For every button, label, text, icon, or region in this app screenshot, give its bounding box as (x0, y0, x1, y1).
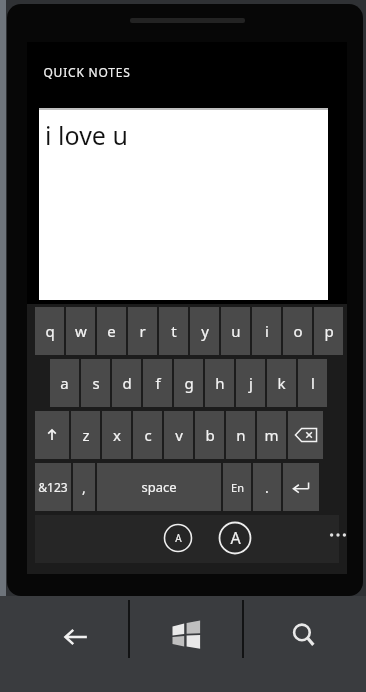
button[interactable]: i (252, 307, 281, 355)
staticText: a (60, 373, 69, 393)
staticText: o (293, 321, 303, 341)
button[interactable]: j (236, 359, 265, 407)
button[interactable]: d (112, 359, 141, 407)
button[interactable]: n (226, 411, 255, 459)
staticText: . (265, 478, 269, 497)
staticText: p (324, 321, 334, 341)
staticText: l (311, 373, 315, 393)
staticText: A (230, 527, 241, 549)
button[interactable]: e (97, 307, 126, 355)
staticText: k (277, 373, 286, 393)
button[interactable]: Input mode A (163, 523, 193, 553)
button[interactable]: Back (34, 608, 118, 666)
staticText: s (92, 373, 100, 393)
staticText: q (45, 321, 55, 341)
staticText: b (205, 425, 215, 445)
button[interactable]: i love u (39, 108, 328, 300)
button[interactable]: . (253, 463, 281, 511)
button[interactable]: More options (323, 523, 353, 547)
staticText: r (139, 321, 146, 341)
button[interactable]: Start (155, 608, 217, 662)
staticText: A (175, 531, 182, 545)
button[interactable]: l (298, 359, 327, 407)
button[interactable]: En (223, 463, 251, 511)
staticText: n (236, 425, 246, 445)
button[interactable]: a (50, 359, 79, 407)
button[interactable]: b (195, 411, 224, 459)
staticText: QUICK NOTES (43, 64, 131, 80)
button[interactable]: Input mode large A (218, 521, 252, 555)
staticText: u (231, 321, 241, 341)
staticText: d (122, 373, 132, 393)
staticText: f (155, 373, 161, 393)
button[interactable]: space (97, 463, 221, 511)
button[interactable]: Enter (283, 463, 319, 511)
staticText: i love u (45, 118, 128, 152)
button[interactable]: z (71, 411, 100, 459)
button[interactable]: Shift (35, 411, 69, 459)
button[interactable]: m (257, 411, 286, 459)
staticText: h (215, 373, 225, 393)
staticText: w (75, 321, 87, 341)
button[interactable]: h (205, 359, 234, 407)
staticText: e (107, 321, 116, 341)
staticText: v (175, 425, 183, 445)
staticText: y (201, 321, 209, 341)
button[interactable]: x (102, 411, 131, 459)
button[interactable]: q (35, 307, 64, 355)
button[interactable]: c (133, 411, 162, 459)
button[interactable]: Backspace (288, 411, 323, 459)
button[interactable]: u (221, 307, 250, 355)
staticText: i (265, 321, 269, 341)
staticText: z (82, 425, 90, 445)
staticText: c (144, 425, 152, 445)
button[interactable]: s (81, 359, 110, 407)
button[interactable]: QUICK NOTES (41, 62, 133, 82)
button[interactable]: v (164, 411, 193, 459)
staticText: En (231, 480, 244, 495)
staticText: g (184, 373, 194, 393)
button[interactable]: &123 (35, 463, 71, 511)
button[interactable]: p (314, 307, 343, 355)
staticText: j (249, 373, 253, 393)
staticText: m (264, 425, 279, 445)
button[interactable]: Search (275, 608, 333, 662)
button[interactable]: w (66, 307, 95, 355)
button[interactable]: k (267, 359, 296, 407)
staticText: space (141, 478, 177, 496)
staticText: x (113, 425, 121, 445)
button[interactable]: g (174, 359, 203, 407)
button[interactable]: , (73, 463, 95, 511)
button[interactable]: o (283, 307, 312, 355)
button[interactable]: t (159, 307, 188, 355)
button[interactable]: r (128, 307, 157, 355)
staticText: , (82, 478, 86, 497)
staticText: t (171, 321, 177, 341)
staticText: &123 (38, 479, 68, 495)
button[interactable]: f (143, 359, 172, 407)
button[interactable]: y (190, 307, 219, 355)
